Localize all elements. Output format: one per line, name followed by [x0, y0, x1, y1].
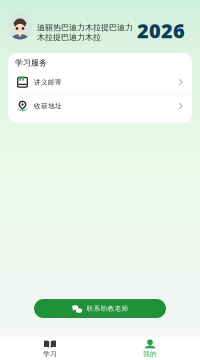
staticText: 讲义邮寄	[34, 78, 62, 86]
button[interactable]: 学习	[0, 337, 100, 360]
staticText: 2026	[137, 17, 185, 44]
button[interactable]: 联系助教老师	[34, 299, 166, 318]
staticText: 我的	[143, 350, 157, 358]
button[interactable]: 我的	[100, 337, 200, 360]
staticText: 联系助教老师	[86, 304, 128, 313]
staticText: 学习服务	[15, 58, 47, 68]
staticText: 收获地址	[34, 102, 62, 110]
button[interactable]: 讲义邮寄	[8, 71, 192, 94]
staticText: 学习	[43, 350, 57, 358]
staticText: 迪丽热巴迪力木拉提巴迪力木拉提巴迪力木拉	[37, 23, 133, 42]
button[interactable]: 收获地址	[8, 94, 192, 117]
